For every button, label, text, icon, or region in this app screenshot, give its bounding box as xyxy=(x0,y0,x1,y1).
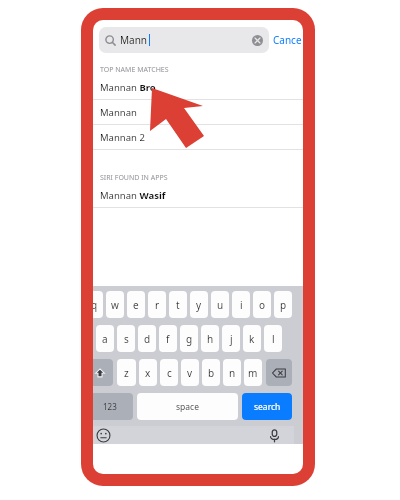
staticText: SIRI FOUND IN APPS xyxy=(100,173,168,183)
staticText: Mannan xyxy=(100,131,137,144)
staticText: Wasif xyxy=(137,189,166,202)
button[interactable]: t xyxy=(169,291,187,318)
button[interactable]: n xyxy=(223,359,241,386)
staticText: s xyxy=(124,332,129,346)
button[interactable]: Clear search xyxy=(252,35,263,46)
button[interactable]: i xyxy=(232,291,250,318)
button[interactable]: e xyxy=(127,291,145,318)
button[interactable]: r xyxy=(148,291,166,318)
staticText: p xyxy=(280,298,287,312)
button[interactable]: x xyxy=(139,359,157,386)
staticText: q xyxy=(93,298,98,312)
staticText: i xyxy=(240,298,243,312)
staticText: y xyxy=(196,298,202,312)
button[interactable]: Backspace xyxy=(266,359,292,386)
staticText: v xyxy=(187,366,193,380)
button[interactable]: p xyxy=(274,291,292,318)
button[interactable]: q xyxy=(93,291,103,318)
button[interactable]: Mannan xyxy=(93,75,303,99)
staticText: f xyxy=(166,332,170,346)
staticText: Mannan xyxy=(100,81,137,94)
button[interactable]: Emoji keyboard xyxy=(96,428,111,443)
button[interactable]: Dictate xyxy=(267,428,282,443)
button[interactable]: u xyxy=(211,291,229,318)
staticText: j xyxy=(230,332,233,346)
staticText: h xyxy=(207,332,214,346)
button[interactable]: g xyxy=(180,325,198,352)
button[interactable]: a xyxy=(96,325,114,352)
button[interactable]: f xyxy=(159,325,177,352)
button[interactable]: Mannan xyxy=(93,100,303,124)
staticText: r xyxy=(155,298,160,312)
button[interactable]: space xyxy=(137,393,238,420)
staticText: search xyxy=(254,401,281,413)
staticText: space xyxy=(176,401,199,413)
staticText: z xyxy=(124,366,129,380)
staticText: d xyxy=(144,332,151,346)
staticText: Mannan xyxy=(100,106,137,119)
staticText: o xyxy=(259,298,266,312)
staticText: Cancel xyxy=(273,33,303,47)
staticText: a xyxy=(102,332,108,346)
staticText: Mann xyxy=(120,33,148,47)
button[interactable]: 123 xyxy=(93,393,133,420)
button[interactable]: o xyxy=(253,291,271,318)
button[interactable]: s xyxy=(117,325,135,352)
button[interactable]: y xyxy=(190,291,208,318)
button[interactable]: l xyxy=(264,325,282,352)
button[interactable]: search xyxy=(242,393,292,420)
staticText: w xyxy=(111,298,119,312)
button[interactable]: Mannan xyxy=(93,125,303,149)
button[interactable]: Cancel xyxy=(273,27,303,53)
button[interactable]: Shift xyxy=(93,359,113,386)
button[interactable]: w xyxy=(106,291,124,318)
staticText: c xyxy=(167,366,172,380)
staticText: TOP NAME MATCHES xyxy=(100,65,169,75)
staticText: m xyxy=(248,366,258,380)
staticText: Mannan xyxy=(100,189,137,202)
button[interactable]: h xyxy=(201,325,219,352)
staticText: x xyxy=(145,366,151,380)
staticText: 123 xyxy=(103,401,117,412)
staticText: t xyxy=(176,298,180,312)
button[interactable]: m xyxy=(244,359,262,386)
button[interactable]: v xyxy=(181,359,199,386)
staticText: b xyxy=(208,366,215,380)
button[interactable]: d xyxy=(138,325,156,352)
button[interactable]: j xyxy=(222,325,240,352)
staticText: Bro xyxy=(137,81,156,94)
button[interactable]: b xyxy=(202,359,220,386)
staticText: l xyxy=(272,332,275,346)
staticText: u xyxy=(217,298,224,312)
button[interactable]: z xyxy=(117,359,136,386)
button[interactable]: c xyxy=(160,359,178,386)
button[interactable]: Mannan xyxy=(93,183,303,207)
button[interactable]: Mann xyxy=(99,27,269,53)
staticText: 2 xyxy=(137,131,145,144)
staticText: g xyxy=(186,332,193,346)
button[interactable]: k xyxy=(243,325,261,352)
staticText: n xyxy=(229,366,236,380)
staticText: k xyxy=(249,332,255,346)
staticText: e xyxy=(133,298,139,312)
